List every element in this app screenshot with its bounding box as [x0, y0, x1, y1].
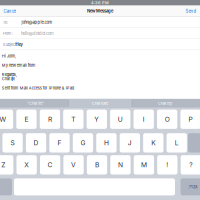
staticText: L	[175, 139, 179, 147]
staticText: Subject:	[3, 42, 17, 47]
staticText: P	[189, 115, 193, 123]
staticText: Sent from Mail Access for iPhone & iPad	[2, 86, 74, 90]
button[interactable]: Cancel	[0, 6, 200, 17]
staticText: john@apple.com	[21, 20, 52, 25]
staticText: W	[0, 115, 6, 123]
staticText: My new email from	[2, 63, 36, 68]
staticText: U	[118, 115, 123, 123]
staticText: N	[118, 161, 123, 169]
button[interactable]: ?	[181, 155, 200, 174]
button[interactable]: K	[143, 133, 163, 152]
staticText: H	[104, 139, 109, 147]
button[interactable]: V	[63, 155, 84, 174]
staticText: Cancel	[3, 9, 16, 14]
button[interactable]: P	[180, 110, 200, 129]
button[interactable]: W	[0, 110, 13, 129]
staticText: Send	[186, 9, 197, 14]
button[interactable]: C	[40, 155, 60, 174]
staticText: .?123	[188, 184, 197, 189]
button[interactable]: .?123	[180, 178, 200, 195]
button[interactable]: Charlotte	[68, 99, 131, 108]
staticText: From:	[3, 31, 13, 36]
button[interactable]: I	[133, 110, 154, 129]
button[interactable]: T	[63, 110, 83, 129]
button[interactable]: G	[73, 133, 93, 152]
button[interactable]	[0, 178, 12, 195]
staticText: To:	[3, 20, 8, 25]
staticText: Hi John,	[2, 54, 16, 58]
button[interactable]: Charley	[132, 99, 198, 108]
staticText: M	[141, 161, 147, 169]
staticText: Charley	[158, 101, 172, 106]
button[interactable]: Z	[0, 155, 13, 174]
staticText: S	[11, 139, 15, 147]
staticText: V	[71, 161, 76, 169]
staticText: F	[57, 139, 61, 147]
button[interactable]: Send	[0, 6, 200, 17]
button[interactable]: X	[16, 155, 37, 174]
button[interactable]: S	[2, 133, 23, 152]
button[interactable]: O	[157, 110, 177, 129]
staticText: Y	[94, 115, 99, 123]
staticText: X	[24, 161, 29, 169]
staticText: hello@dotdot.com	[21, 31, 54, 36]
button[interactable]: Y	[87, 110, 107, 129]
staticText: Z	[1, 161, 5, 169]
staticText: 4:36 PM	[91, 0, 109, 5]
staticText: G	[80, 139, 85, 147]
staticText: I	[143, 115, 145, 123]
staticText: R	[48, 115, 52, 123]
staticText: Charlotte	[92, 101, 108, 106]
staticText: J	[128, 139, 132, 147]
staticText: C	[48, 161, 53, 169]
button[interactable]: N	[110, 155, 131, 174]
button[interactable]: J	[120, 133, 140, 152]
staticText: B	[95, 161, 99, 169]
button[interactable]: R	[40, 110, 60, 129]
button[interactable]: U	[110, 110, 130, 129]
staticText: K	[151, 139, 155, 147]
staticText: Charlie	[2, 76, 15, 81]
staticText: “Charlie”	[27, 101, 44, 106]
button[interactable]: L	[167, 133, 187, 152]
button[interactable]: !	[157, 155, 177, 174]
button[interactable]: F	[49, 133, 70, 152]
staticText: Hey	[15, 42, 22, 47]
staticText: E	[24, 115, 28, 123]
button[interactable]: D	[26, 133, 46, 152]
staticText: !	[166, 161, 168, 169]
button[interactable]: M	[134, 155, 154, 174]
button[interactable]: H	[96, 133, 116, 152]
staticText: T	[71, 115, 75, 123]
button[interactable]: B	[87, 155, 107, 174]
staticText: New Message	[87, 9, 113, 14]
staticText: ?	[189, 161, 192, 169]
button[interactable]: E	[16, 110, 37, 129]
staticText: D	[33, 139, 38, 147]
button[interactable]: “Charlie”	[2, 99, 68, 108]
button[interactable]	[14, 178, 175, 195]
staticText: O	[165, 115, 170, 123]
staticText: Regards,	[2, 72, 17, 77]
